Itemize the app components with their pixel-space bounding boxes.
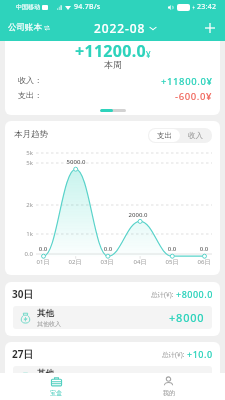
button[interactable]: 公司账本 xyxy=(8,22,50,33)
staticText: 23:42 xyxy=(197,2,217,12)
staticText: 2022-08 xyxy=(94,20,146,36)
staticText: +10 xyxy=(183,370,205,385)
staticText: 其他收入 xyxy=(37,380,61,388)
staticText: 总计(¥): xyxy=(151,290,176,299)
staticText: 其他收入 xyxy=(37,320,61,328)
staticText: 01日 xyxy=(33,258,53,266)
staticText: 05日 xyxy=(162,258,182,266)
button[interactable]: 我的 xyxy=(112,373,225,400)
staticText: 2000.0 xyxy=(124,211,152,219)
staticText: 其他 xyxy=(37,368,54,379)
staticText: +11200.0 xyxy=(75,41,146,62)
staticText: 03日 xyxy=(97,258,117,266)
staticText: 公司账本 xyxy=(8,22,42,33)
staticText: 总计(¥): xyxy=(162,350,187,359)
staticText: 本周 xyxy=(104,59,122,70)
button[interactable]: Add xyxy=(199,17,221,39)
staticText: -600.0¥ xyxy=(175,90,213,103)
staticText: 2k xyxy=(9,201,33,209)
staticText: 0.0 xyxy=(9,250,33,258)
staticText: 我的 xyxy=(163,389,175,397)
staticText: 其他 xyxy=(37,308,54,319)
button[interactable]: 2022-08 xyxy=(94,20,157,36)
staticText: +8000 xyxy=(169,310,205,325)
button[interactable]: 宝盒 xyxy=(0,373,112,400)
staticText: 支出： xyxy=(18,90,42,100)
staticText: 宝盒 xyxy=(50,389,62,397)
staticText: 04日 xyxy=(130,258,150,266)
staticText: 0.0 xyxy=(190,245,218,253)
button[interactable]: 30日 xyxy=(5,282,220,336)
button[interactable]: 27日 xyxy=(5,342,220,396)
staticText: 收入 xyxy=(188,131,203,140)
staticText: 1k xyxy=(9,230,33,238)
staticText: +10.0 xyxy=(187,348,213,360)
staticText: +11800.0¥ xyxy=(161,75,213,88)
staticText: 30日 xyxy=(12,287,34,301)
staticText: 27日 xyxy=(12,347,34,361)
staticText: 中国移动 xyxy=(16,3,40,11)
staticText: 收入： xyxy=(18,75,42,85)
button[interactable]: 收入 xyxy=(180,129,211,142)
staticText: 5000.0 xyxy=(62,158,90,166)
staticText: 0.0 xyxy=(29,245,57,253)
staticText: ¥ xyxy=(146,49,151,60)
staticText: 5k xyxy=(9,149,33,157)
staticText: 94.7B/s xyxy=(74,2,101,12)
staticText: 支出 xyxy=(157,131,172,140)
staticText: +8000.0 xyxy=(176,288,213,300)
staticText: 0.0 xyxy=(94,245,122,253)
staticText: 5k xyxy=(9,159,33,167)
staticText: 06日 xyxy=(194,258,214,266)
staticText: 本月趋势 xyxy=(14,129,48,140)
button[interactable]: 支出 xyxy=(149,129,180,142)
staticText: 0.0 xyxy=(158,245,186,253)
staticText: 02日 xyxy=(65,258,85,266)
